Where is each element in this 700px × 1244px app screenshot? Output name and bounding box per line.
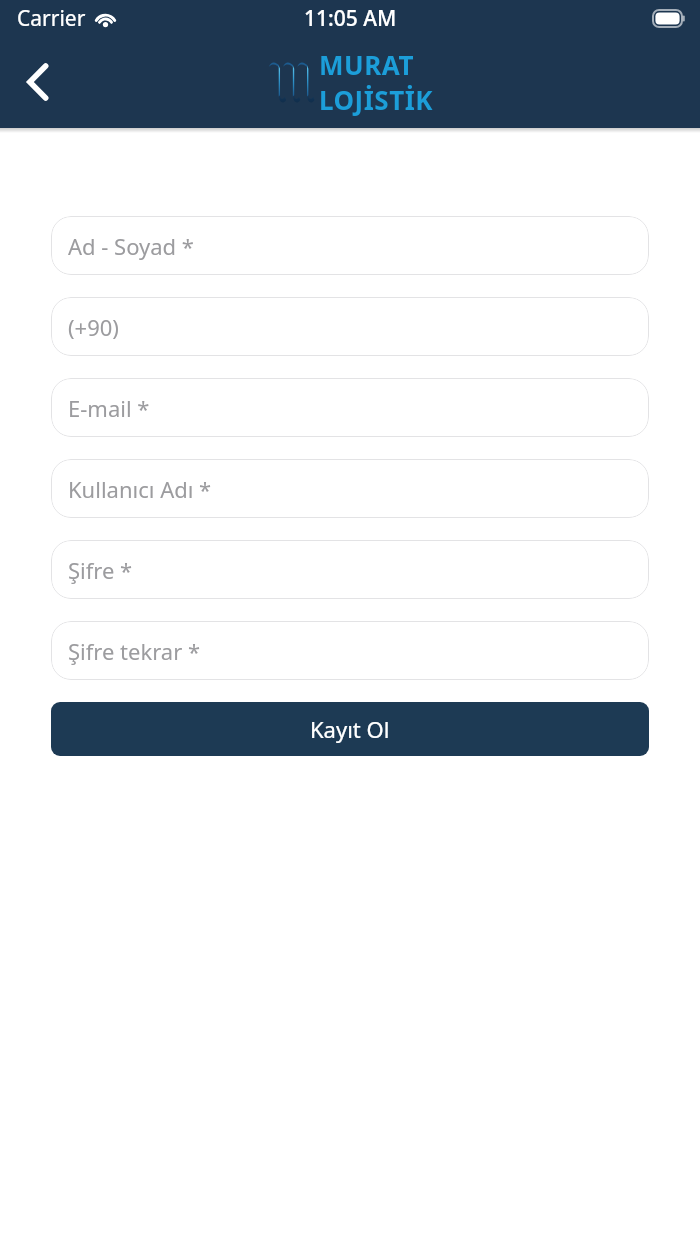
button[interactable]: Ad - Soyad * [51, 216, 649, 275]
button[interactable]: Back [8, 52, 68, 112]
button[interactable]: Şifre * [51, 540, 649, 599]
button[interactable]: Kayıt Ol [51, 702, 649, 756]
staticText: 11:05 AM [304, 4, 397, 33]
staticText: Kayıt Ol [310, 714, 390, 744]
staticText: Carrier [17, 4, 86, 33]
button[interactable]: Kullanıcı Adı * [51, 459, 649, 518]
button[interactable]: Şifre tekrar * [51, 621, 649, 680]
button[interactable]: E-mail * [51, 378, 649, 437]
staticText: Ad - Soyad * [68, 231, 194, 261]
staticText: (+90) [68, 312, 119, 342]
staticText: Kullanıcı Adı * [68, 474, 212, 504]
staticText: Şifre tekrar * [68, 636, 201, 666]
staticText: Şifre * [68, 555, 133, 585]
staticText: LOJİSTİK [319, 82, 434, 117]
staticText: E-mail * [68, 393, 150, 423]
staticText: MURAT [319, 47, 414, 82]
button[interactable]: (+90) [51, 297, 649, 356]
